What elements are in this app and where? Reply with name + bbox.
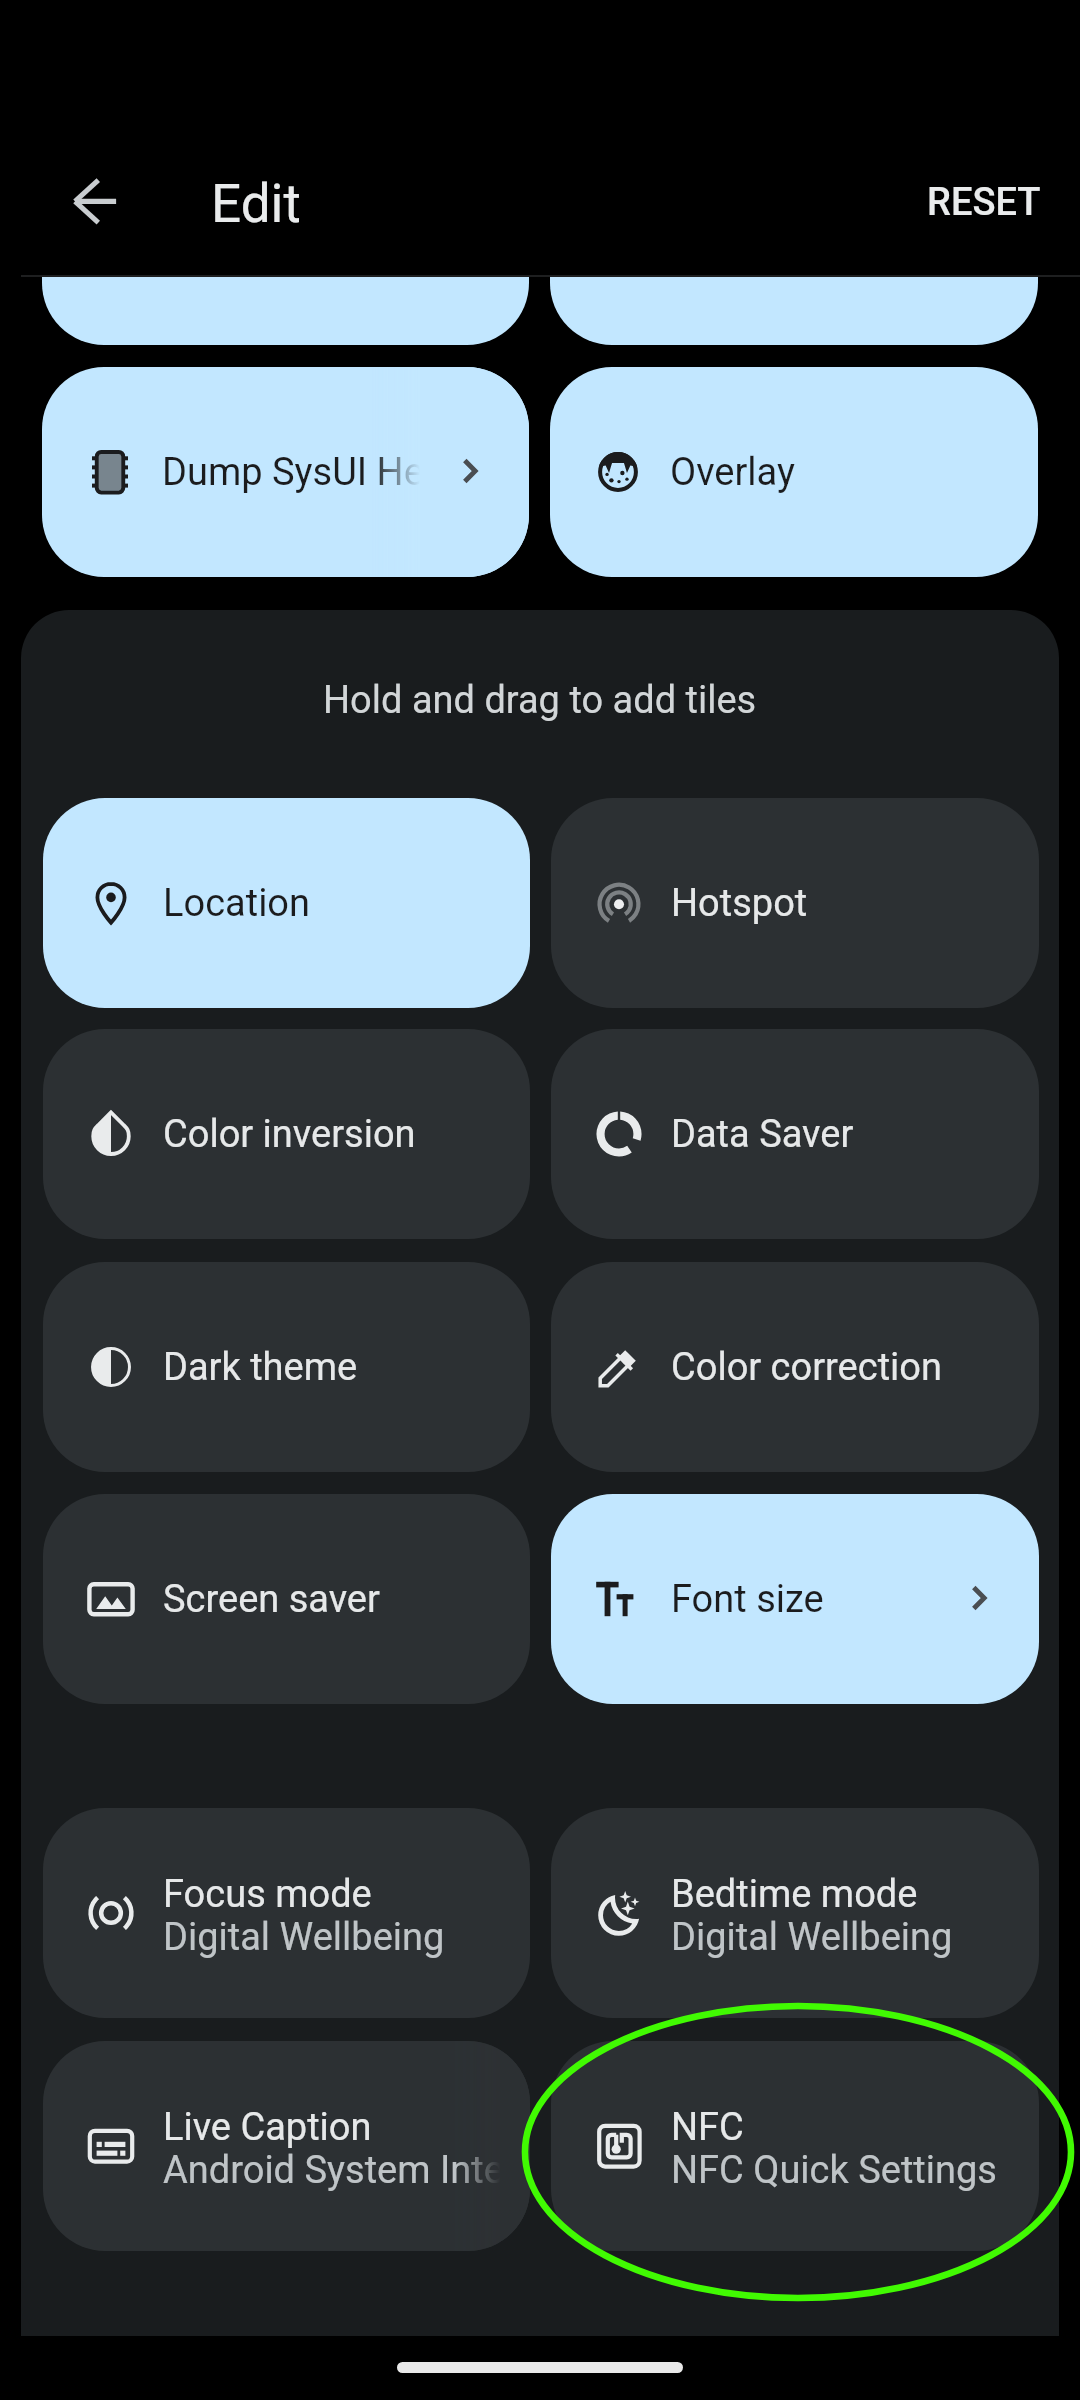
- button[interactable]: NFC: [551, 2041, 1039, 2251]
- staticText: NFC Quick Settings: [671, 2148, 997, 2193]
- staticText: NFC: [671, 2105, 744, 2150]
- button[interactable]: Focus mode: [43, 1808, 530, 2018]
- staticText: RESET: [927, 180, 1041, 225]
- staticText: Color correction: [671, 1345, 942, 1390]
- button[interactable]: Location: [43, 798, 530, 1008]
- button[interactable]: Quick settings tile: [550, 275, 1038, 345]
- button[interactable]: Color correction: [551, 1262, 1039, 1472]
- button[interactable]: Dump SysUI Heap: [42, 367, 529, 577]
- staticText: Edit: [211, 173, 301, 235]
- button[interactable]: Hotspot: [551, 798, 1039, 1008]
- staticText: Bedtime mode: [671, 1872, 918, 1917]
- staticText: Screen saver: [163, 1577, 380, 1622]
- button[interactable]: Font size: [551, 1494, 1039, 1704]
- staticText: Overlay: [670, 450, 795, 495]
- staticText: Android System Intelligence: [163, 2148, 530, 2193]
- button[interactable]: Bedtime mode: [551, 1808, 1039, 2018]
- button[interactable]: Live Caption: [43, 2041, 530, 2251]
- staticText: Focus mode: [163, 1872, 372, 1917]
- button[interactable]: Overlay: [550, 367, 1038, 577]
- button[interactable]: Color inversion: [43, 1029, 530, 1239]
- staticText: Hotspot: [671, 881, 808, 926]
- staticText: Dark theme: [163, 1345, 358, 1390]
- staticText: Dump SysUI Heap: [162, 450, 466, 495]
- staticText: Digital Wellbeing: [671, 1915, 953, 1960]
- staticText: Font size: [671, 1577, 824, 1622]
- button[interactable]: RESET: [899, 164, 1069, 241]
- staticText: Color inversion: [163, 1112, 416, 1157]
- button[interactable]: Back: [47, 153, 143, 249]
- button[interactable]: Quick settings tile: [42, 275, 529, 345]
- button[interactable]: Dark theme: [43, 1262, 530, 1472]
- staticText: Live Caption: [163, 2105, 372, 2150]
- button[interactable]: Data Saver: [551, 1029, 1039, 1239]
- button[interactable]: Screen saver: [43, 1494, 530, 1704]
- staticText: Digital Wellbeing: [163, 1915, 445, 1960]
- staticText: Data Saver: [671, 1112, 854, 1157]
- staticText: Location: [163, 881, 311, 926]
- staticText: Hold and drag to add tiles: [323, 678, 757, 723]
